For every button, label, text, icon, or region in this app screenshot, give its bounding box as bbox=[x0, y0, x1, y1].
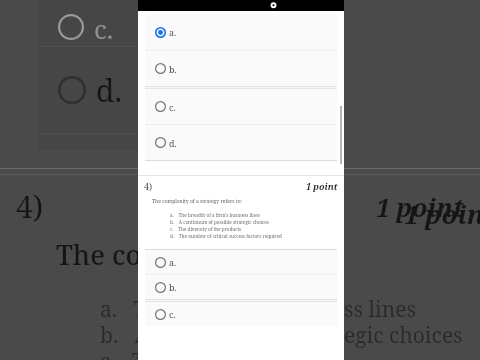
staticText: 4) bbox=[16, 186, 44, 227]
button[interactable]: a. bbox=[145, 250, 337, 274]
staticText: b. bbox=[169, 281, 177, 293]
staticText: a. T bbox=[100, 295, 147, 324]
staticText: 1 point bbox=[306, 180, 338, 192]
button[interactable]: b. bbox=[145, 51, 337, 86]
button[interactable]: c. bbox=[145, 89, 337, 124]
staticText: The comple bbox=[56, 236, 208, 273]
staticText: d. bbox=[96, 70, 122, 111]
staticText: c. bbox=[94, 11, 114, 46]
staticText: c. The diversity of the products bbox=[170, 226, 242, 232]
staticText: b. bbox=[169, 63, 177, 75]
staticText: c. T bbox=[100, 347, 145, 360]
staticText: egic choices bbox=[344, 321, 463, 350]
staticText: ss lines bbox=[344, 295, 416, 324]
staticText: d. bbox=[169, 137, 177, 149]
button[interactable]: b. bbox=[145, 275, 337, 299]
staticText: 1 point bbox=[404, 196, 480, 231]
staticText: d. The number of critical success factor… bbox=[170, 233, 282, 239]
staticText: c. bbox=[169, 308, 176, 320]
staticText: a. The breadth of a firm's business line… bbox=[170, 212, 260, 218]
button[interactable]: a. bbox=[145, 14, 337, 50]
staticText: a. bbox=[169, 26, 177, 38]
staticText: c. bbox=[169, 101, 176, 113]
staticText: The complexity of a strategy refers to: bbox=[152, 198, 242, 205]
staticText: b. A continuum of possible strategic cho… bbox=[170, 219, 269, 225]
other: Status bbox=[270, 2, 277, 9]
button[interactable]: c. bbox=[145, 302, 337, 326]
button[interactable]: d. bbox=[145, 125, 337, 160]
staticText: a. bbox=[169, 256, 177, 268]
button[interactable]: d. bbox=[38, 47, 310, 133]
staticText: 1 point bbox=[376, 190, 464, 224]
button[interactable]: c. bbox=[38, 0, 310, 46]
staticText: 4) bbox=[144, 180, 153, 192]
staticText: b. A bbox=[100, 321, 150, 350]
